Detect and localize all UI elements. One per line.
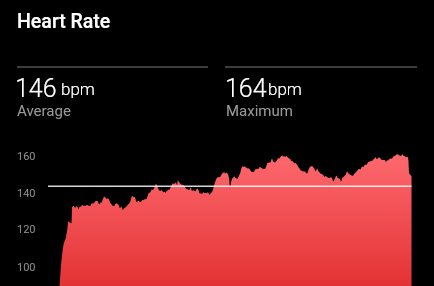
staticText: 164 bbox=[225, 74, 267, 103]
button[interactable]: 146 bbox=[14, 70, 208, 120]
button[interactable]: 164 bbox=[223, 70, 417, 120]
staticText: 160 bbox=[17, 150, 36, 163]
staticText: Maximum bbox=[226, 102, 293, 120]
staticText: bpm bbox=[268, 79, 302, 99]
staticText: 146 bbox=[15, 74, 57, 103]
staticText: Heart Rate bbox=[17, 10, 111, 33]
staticText: bpm bbox=[61, 79, 95, 99]
staticText: 120 bbox=[17, 223, 36, 236]
staticText: 140 bbox=[17, 187, 36, 200]
staticText: 100 bbox=[17, 261, 36, 274]
staticText: Average bbox=[17, 102, 71, 120]
button[interactable]: Heart Rate bbox=[6, 2, 122, 36]
